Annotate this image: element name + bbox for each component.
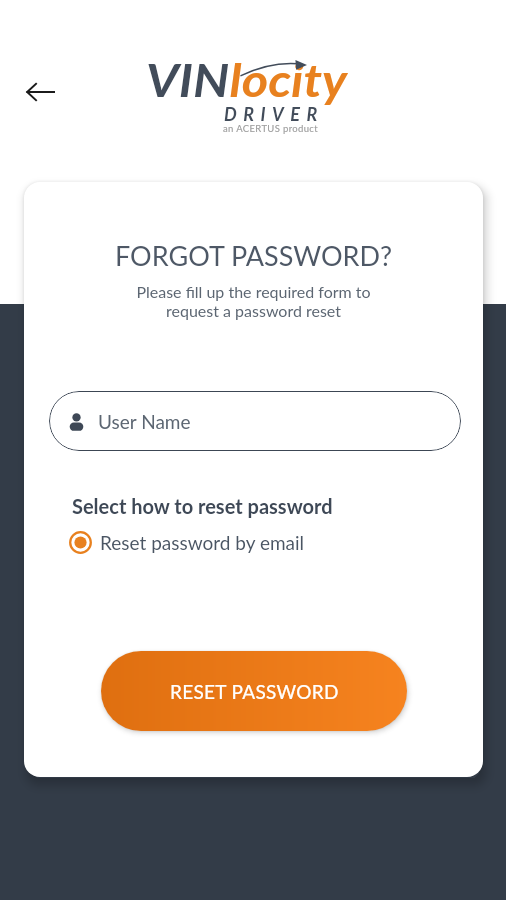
button[interactable]: Reset password by email [69,531,305,554]
staticText: Reset password by email [100,531,305,554]
button[interactable]: Back [14,66,66,118]
staticText: Please fill up the required form to requ… [136,282,371,321]
button[interactable]: User Name [49,391,461,451]
staticText: an ACERTUS product [223,123,318,134]
staticText: RESET PASSWORD [170,680,339,703]
button[interactable]: RESET PASSWORD [101,651,407,731]
staticText: Select how to reset password [72,494,333,518]
staticText: FORGOT PASSWORD? [115,239,393,271]
staticText: DRIVER [224,103,324,125]
staticText: User Name [98,410,191,433]
staticText: locity [230,52,347,107]
staticText: VIN [146,52,230,107]
